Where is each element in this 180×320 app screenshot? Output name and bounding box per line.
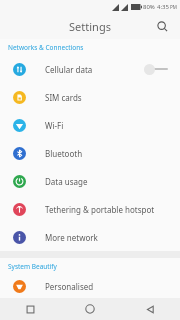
staticText: Bluetooth xyxy=(45,148,170,159)
staticText: PM xyxy=(170,4,177,10)
staticText: Cellular data xyxy=(45,64,144,75)
staticText: Data usage xyxy=(45,176,170,187)
staticText: Settings xyxy=(69,19,111,34)
staticText: More network xyxy=(45,232,170,243)
staticText: System Beautify xyxy=(8,262,57,271)
button[interactable]: More network xyxy=(0,223,180,251)
button[interactable]: Recent apps xyxy=(0,298,60,320)
button[interactable]: Data usage xyxy=(0,167,180,195)
staticText: Networks & Connections xyxy=(8,43,84,52)
button[interactable]: Wi-Fi xyxy=(0,111,180,139)
staticText: 4:35 xyxy=(157,3,169,11)
staticText: 80% xyxy=(143,3,155,11)
button[interactable]: Back xyxy=(120,298,180,320)
button[interactable]: Cellular data xyxy=(0,55,180,83)
button[interactable]: Bluetooth xyxy=(0,139,180,167)
staticText: Personalised xyxy=(45,281,170,292)
button[interactable]: SIM cards xyxy=(0,83,180,111)
staticText: Wi-Fi xyxy=(45,120,170,131)
button[interactable]: Home xyxy=(60,298,120,320)
button[interactable]: Search xyxy=(152,16,172,36)
staticText: SIM cards xyxy=(45,92,170,103)
button[interactable]: Tethering & portable hotspot xyxy=(0,195,180,223)
staticText: Tethering & portable hotspot xyxy=(45,204,170,215)
button[interactable]: Personalised xyxy=(0,274,180,298)
